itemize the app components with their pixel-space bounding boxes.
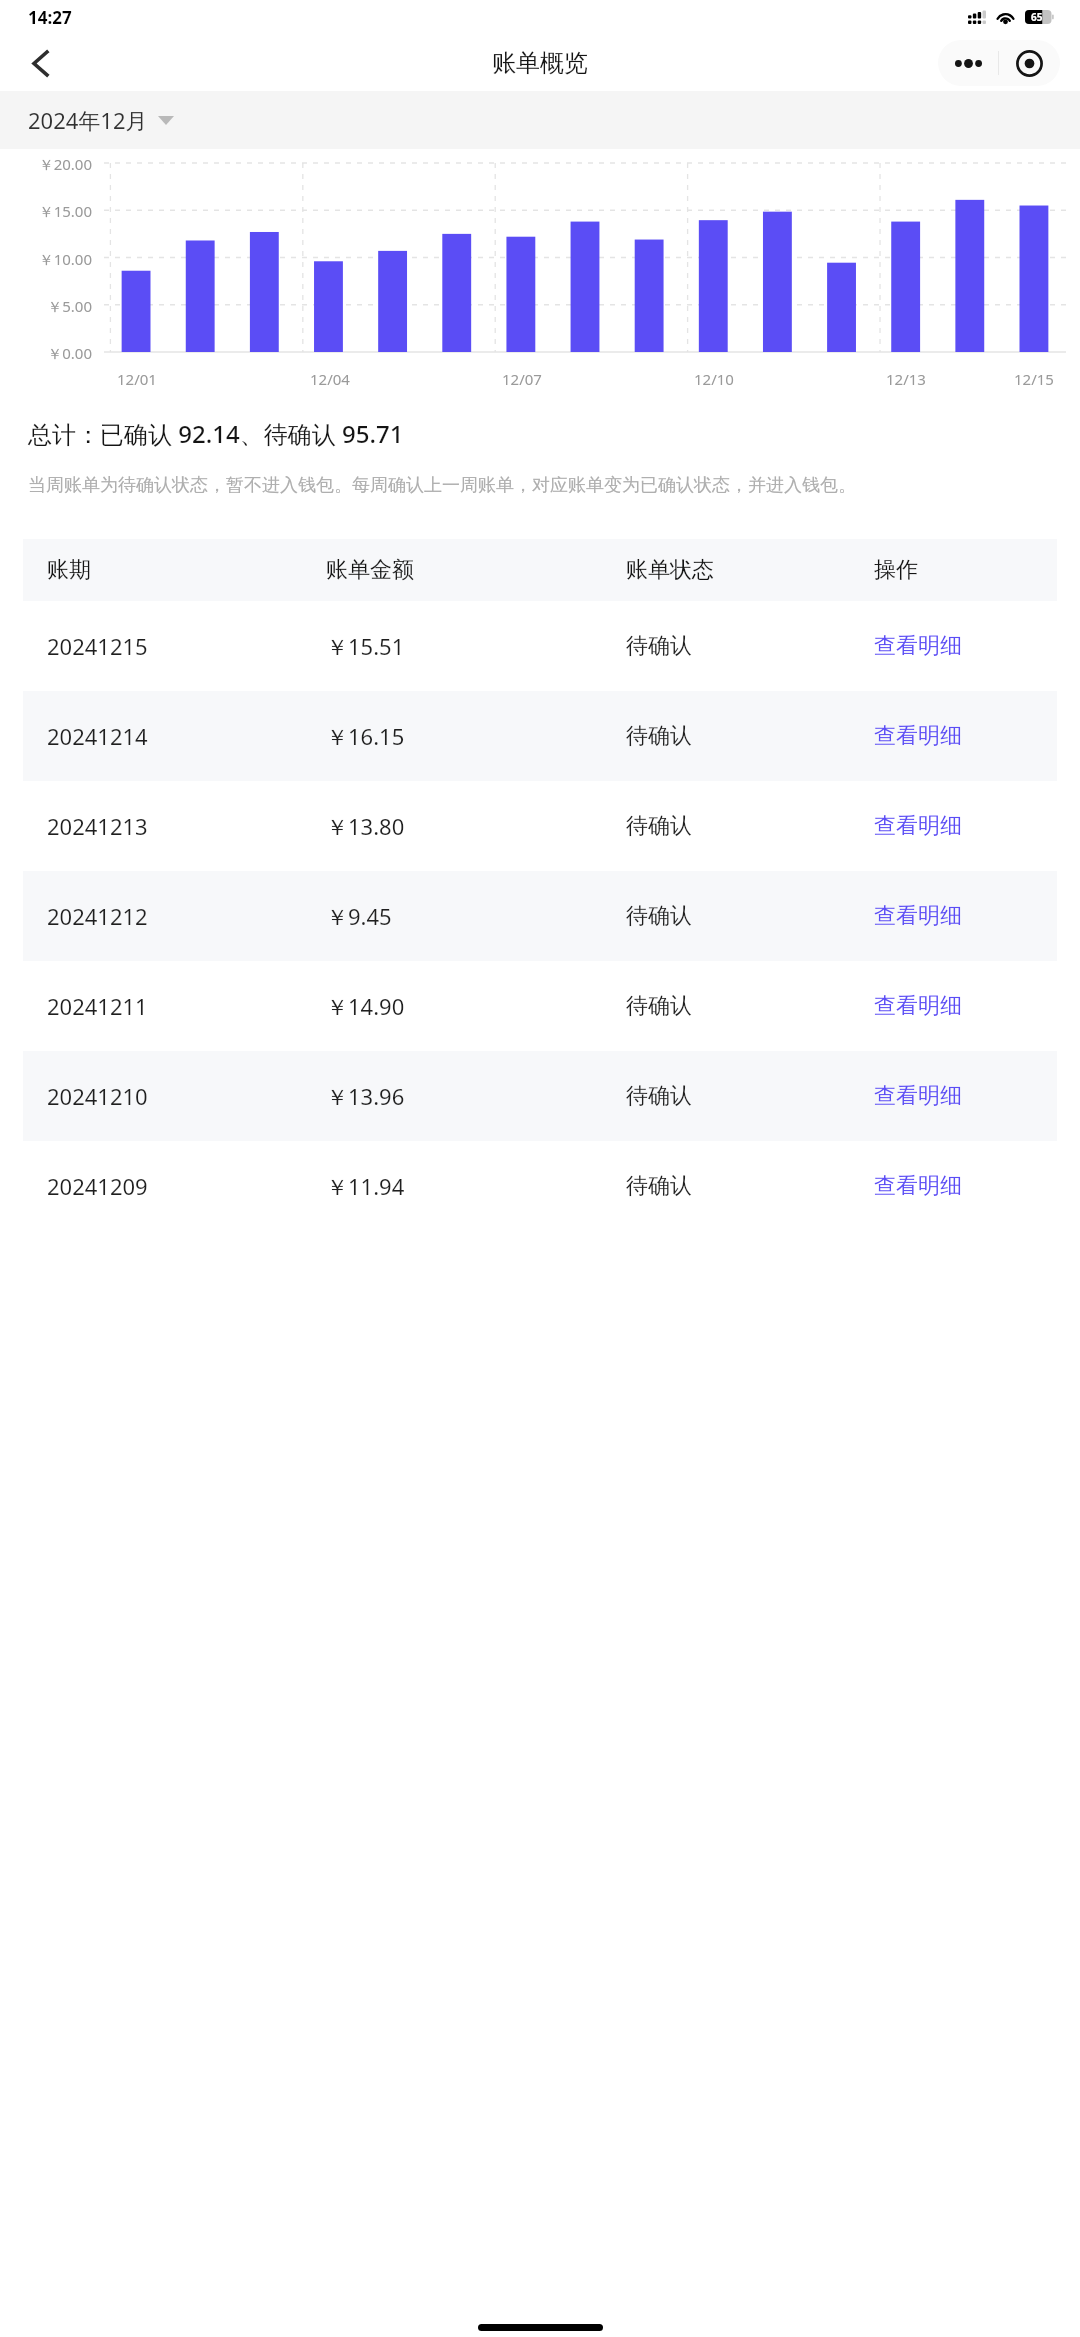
staticText: 65 (1031, 10, 1043, 24)
staticText: 20241214 (47, 721, 148, 751)
staticText: 查看明细 (874, 1172, 962, 1200)
button[interactable]: 查看明细 (850, 691, 1057, 781)
button[interactable]: More options (938, 40, 1060, 86)
button[interactable]: Back (20, 43, 60, 83)
staticText: 查看明细 (874, 632, 962, 660)
staticText: 查看明细 (874, 812, 962, 840)
button[interactable]: 20241214 (23, 691, 1057, 781)
staticText: 20241211 (47, 991, 148, 1021)
staticText: 12/01 (117, 369, 157, 389)
button[interactable]: 20241213 (23, 781, 1057, 871)
staticText: 待确认 (626, 1082, 692, 1110)
staticText: ￥16.15 (326, 721, 405, 751)
button[interactable]: 查看明细 (850, 781, 1057, 871)
staticText: 查看明细 (874, 992, 962, 1020)
staticText: 待确认 (626, 1172, 692, 1200)
staticText: 操作 (874, 556, 918, 584)
staticText: 12/04 (310, 369, 350, 389)
staticText: 20241213 (47, 811, 148, 841)
staticText: ￥13.96 (326, 1081, 405, 1111)
staticText: 待确认 (626, 632, 692, 660)
staticText: 12/13 (886, 369, 926, 389)
staticText: ￥5.00 (0, 296, 92, 316)
staticText: 账期 (47, 556, 91, 584)
staticText: ￥9.45 (326, 901, 392, 931)
staticText: 账单概览 (492, 48, 588, 78)
button[interactable]: 20241210 (23, 1051, 1057, 1141)
staticText: 2024年12月 (28, 105, 148, 135)
button[interactable]: 查看明细 (850, 961, 1057, 1051)
button[interactable]: 查看明细 (850, 1051, 1057, 1141)
staticText: ￥11.94 (326, 1171, 405, 1201)
staticText: 20241209 (47, 1171, 148, 1201)
staticText: ￥0.00 (0, 343, 92, 363)
button[interactable]: 查看明细 (850, 601, 1057, 691)
staticText: 12/07 (502, 369, 542, 389)
staticText: ￥13.80 (326, 811, 405, 841)
button[interactable]: 查看明细 (850, 1141, 1057, 1231)
button[interactable]: 20241209 (23, 1141, 1057, 1231)
staticText: 待确认 (626, 812, 692, 840)
staticText: 账单状态 (626, 556, 714, 584)
button[interactable]: 查看明细 (850, 871, 1057, 961)
staticText: 12/15 (1014, 369, 1054, 389)
staticText: 20241210 (47, 1081, 148, 1111)
staticText: 查看明细 (874, 722, 962, 750)
staticText: 20241212 (47, 901, 148, 931)
staticText: 待确认 (626, 992, 692, 1020)
staticText: ￥15.51 (326, 631, 405, 661)
staticText: 查看明细 (874, 1082, 962, 1110)
staticText: 当周账单为待确认状态，暂不进入钱包。每周确认上一周账单，对应账单变为已确认状态，… (28, 474, 856, 497)
staticText: 待确认 (626, 722, 692, 750)
staticText: 查看明细 (874, 902, 962, 930)
button[interactable]: 20241211 (23, 961, 1057, 1051)
staticText: 待确认 (626, 902, 692, 930)
staticText: 账单金额 (326, 556, 414, 584)
staticText: 20241215 (47, 631, 148, 661)
button[interactable]: 20241215 (23, 601, 1057, 691)
staticText: 总计：已确认 92.14、待确认 95.71 (28, 417, 404, 450)
staticText: ￥20.00 (0, 154, 92, 174)
staticText: ￥10.00 (0, 249, 92, 269)
button[interactable]: 2024年12月 (0, 91, 1080, 149)
staticText: ￥15.00 (0, 201, 92, 221)
staticText: 12/10 (694, 369, 734, 389)
staticText: 14:27 (28, 6, 72, 29)
staticText: ￥14.90 (326, 991, 405, 1021)
button[interactable]: 20241212 (23, 871, 1057, 961)
